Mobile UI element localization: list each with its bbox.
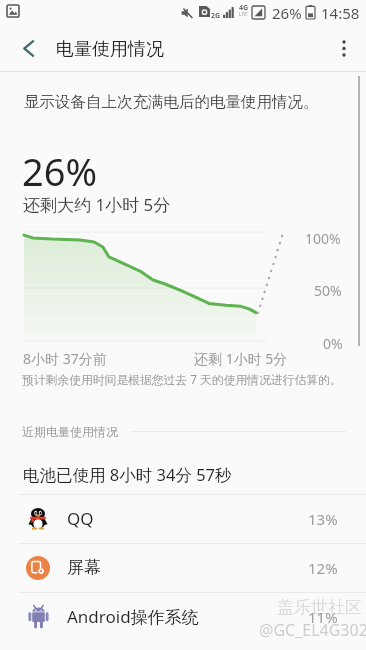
staticText: Android操作系统 [67, 605, 199, 628]
button[interactable]: Back [6, 26, 50, 71]
button[interactable]: QQ [0, 494, 366, 543]
staticText: 还剩大约 1小时 5分 [23, 193, 171, 216]
button[interactable]: 屏幕 [0, 543, 366, 592]
button[interactable]: Android操作系统 [0, 592, 366, 641]
staticText: 11% [308, 607, 338, 627]
button[interactable]: More options [322, 26, 366, 71]
staticText: 13% [308, 509, 338, 529]
staticText: 26% [272, 3, 302, 23]
staticText: 14:58 [321, 3, 360, 23]
staticText: 2G [211, 11, 221, 21]
staticText: 0% [323, 334, 343, 353]
staticText: 100% [305, 229, 341, 248]
staticText: 12% [308, 558, 338, 578]
staticText: 26% [22, 145, 98, 197]
staticText: 近期电量使用情况 [22, 424, 118, 439]
staticText: @GC_EL4G302 [259, 619, 366, 641]
staticText: 8小时 37分前 [23, 349, 107, 368]
staticText: 电量使用情况 [56, 38, 164, 61]
staticText: QQ [67, 507, 94, 530]
staticText: 电池已使用 8小时 34分 57秒 [23, 463, 232, 486]
staticText: 显示设备自上次充满电后的电量使用情况。 [24, 92, 319, 112]
staticText: 4G [239, 3, 249, 13]
staticText: 盖乐世社区 [277, 597, 362, 618]
staticText: 50% [314, 281, 342, 300]
staticText: LTE [239, 11, 248, 18]
staticText: 还剩 1小时 5分 [194, 349, 288, 368]
staticText: 预计剩余使用时间是根据您过去 7 天的使用情况进行估算的。 [22, 371, 342, 387]
staticText: 屏幕 [67, 557, 101, 578]
